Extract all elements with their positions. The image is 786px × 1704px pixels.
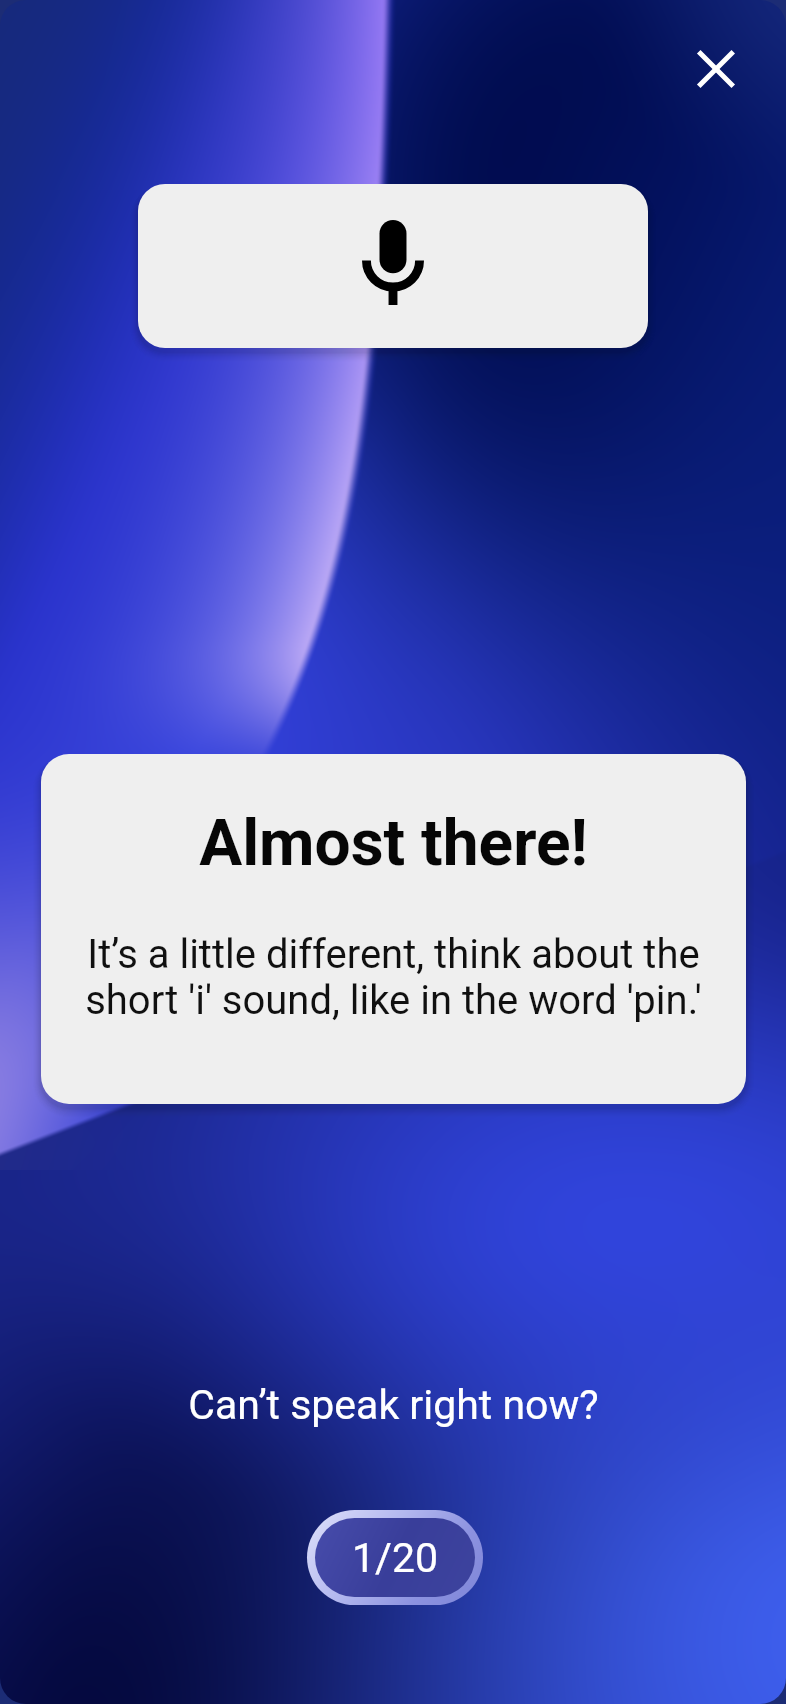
button[interactable]: 1/20 (307, 1510, 483, 1605)
staticText: Can’t speak right now? (188, 1381, 599, 1429)
button[interactable]: Can’t speak right now? (180, 1377, 607, 1433)
staticText: 1/20 (352, 1534, 439, 1582)
button[interactable]: Close (672, 25, 760, 113)
staticText: It’s a little different, think about the… (85, 931, 702, 1024)
button[interactable]: Tap to speak (138, 184, 648, 348)
staticText: Almost there! (199, 806, 588, 881)
